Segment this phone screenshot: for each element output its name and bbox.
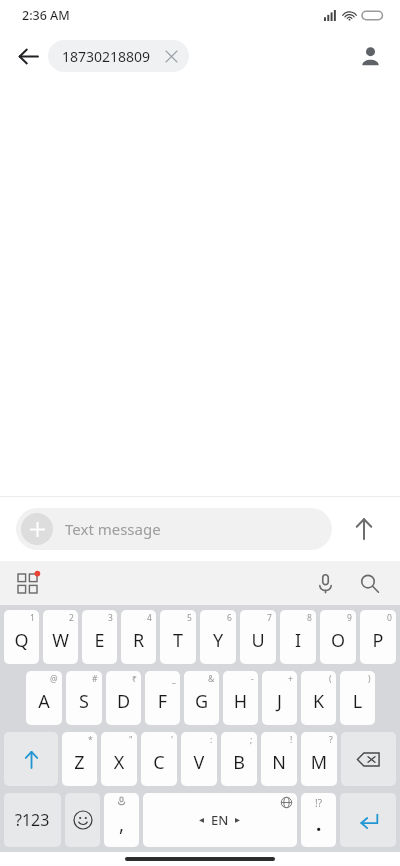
staticText: 2 (69, 612, 74, 624)
staticText: X (101, 750, 137, 775)
button[interactable]: _ (145, 671, 180, 725)
staticText: . (316, 811, 322, 837)
button[interactable]: Clear (161, 46, 181, 66)
button[interactable]: Contact details (350, 36, 390, 76)
staticText: A (26, 689, 62, 714)
staticText: I (280, 628, 316, 653)
staticText: M (301, 750, 337, 775)
staticText: D (106, 689, 141, 714)
button[interactable]: : (181, 732, 217, 786)
staticText: E (82, 628, 117, 653)
button[interactable]: Shift (4, 732, 58, 786)
staticText: EN (211, 811, 229, 829)
button[interactable]: Add attachment (21, 513, 53, 545)
staticText: G (184, 689, 219, 714)
staticText: ( (329, 673, 332, 685)
button[interactable]: ; (221, 732, 257, 786)
staticText: " (129, 734, 133, 746)
button[interactable]: ?123 (4, 793, 61, 847)
button[interactable]: 18730218809 (48, 40, 189, 72)
button[interactable]: 8 (280, 610, 316, 664)
button[interactable]: ₹ (106, 671, 141, 725)
staticText: : (210, 734, 213, 746)
button[interactable]: Emoji (65, 793, 100, 847)
staticText: !? (315, 796, 323, 810)
staticText: + (288, 673, 293, 685)
button[interactable]: & (184, 671, 219, 725)
button[interactable]: * (62, 732, 97, 786)
button[interactable]: Apps (8, 564, 46, 602)
button[interactable]: ) (340, 671, 375, 725)
button[interactable]: ' (141, 732, 177, 786)
staticText: Z (62, 750, 97, 775)
button[interactable]: Comma (104, 793, 139, 847)
button[interactable]: - (223, 671, 258, 725)
button[interactable]: ? (301, 732, 337, 786)
staticText: Text message (65, 519, 161, 539)
staticText: ! (290, 734, 293, 746)
button[interactable]: + (262, 671, 297, 725)
button[interactable]: ! (261, 732, 297, 786)
staticText: W (43, 628, 78, 653)
staticText: 1 (30, 612, 35, 624)
staticText: R (121, 628, 156, 653)
staticText: 9 (347, 612, 352, 624)
staticText: # (92, 673, 98, 685)
staticText: ? (329, 734, 333, 746)
staticText: V (181, 750, 217, 775)
button[interactable]: Send (344, 509, 384, 549)
staticText: U (240, 628, 276, 653)
button[interactable]: 2 (43, 610, 78, 664)
staticText: 6 (227, 612, 232, 624)
staticText: ▸ (235, 814, 241, 826)
staticText: 0 (387, 612, 392, 624)
button[interactable]: Search (350, 564, 388, 602)
staticText: P (360, 628, 396, 653)
button[interactable]: ( (301, 671, 336, 725)
staticText: F (145, 689, 180, 714)
staticText: O (320, 628, 356, 653)
staticText: 3 (108, 612, 113, 624)
staticText: B (221, 750, 257, 775)
staticText: L (340, 689, 375, 714)
button[interactable]: 1 (4, 610, 39, 664)
button[interactable]: 9 (320, 610, 356, 664)
button[interactable]: Backspace (341, 732, 396, 786)
staticText: 8 (307, 612, 312, 624)
staticText: 4 (147, 612, 152, 624)
staticText: ) (368, 673, 371, 685)
staticText: S (66, 689, 102, 714)
button[interactable]: 4 (121, 610, 156, 664)
staticText: @ (50, 673, 58, 685)
button[interactable]: Space (143, 793, 297, 847)
staticText: Y (200, 628, 236, 653)
staticText: K (301, 689, 336, 714)
staticText: - (251, 673, 254, 685)
staticText: & (208, 673, 215, 685)
button[interactable]: Back (8, 36, 48, 76)
staticText: * (88, 734, 93, 746)
staticText: H (223, 689, 258, 714)
staticText: 18730218809 (62, 47, 151, 66)
button[interactable]: Voice input (306, 564, 344, 602)
button[interactable]: 3 (82, 610, 117, 664)
button[interactable]: Add attachment (16, 508, 332, 550)
staticText: ◂ (199, 814, 205, 826)
staticText: Q (4, 628, 39, 653)
staticText: ?123 (15, 809, 50, 831)
button[interactable]: @ (26, 671, 62, 725)
button[interactable]: # (66, 671, 102, 725)
button[interactable]: 0 (360, 610, 396, 664)
staticText: ; (250, 734, 253, 746)
staticText: 2:36 AM (22, 7, 70, 24)
staticText: ₹ (132, 673, 137, 685)
staticText: 5 (187, 612, 192, 624)
staticText: , (119, 811, 125, 837)
button[interactable]: Period (301, 793, 336, 847)
button[interactable]: 5 (160, 610, 196, 664)
button[interactable]: 7 (240, 610, 276, 664)
staticText: C (141, 750, 177, 775)
button[interactable]: Enter (340, 793, 396, 847)
button[interactable]: 6 (200, 610, 236, 664)
button[interactable]: " (101, 732, 137, 786)
